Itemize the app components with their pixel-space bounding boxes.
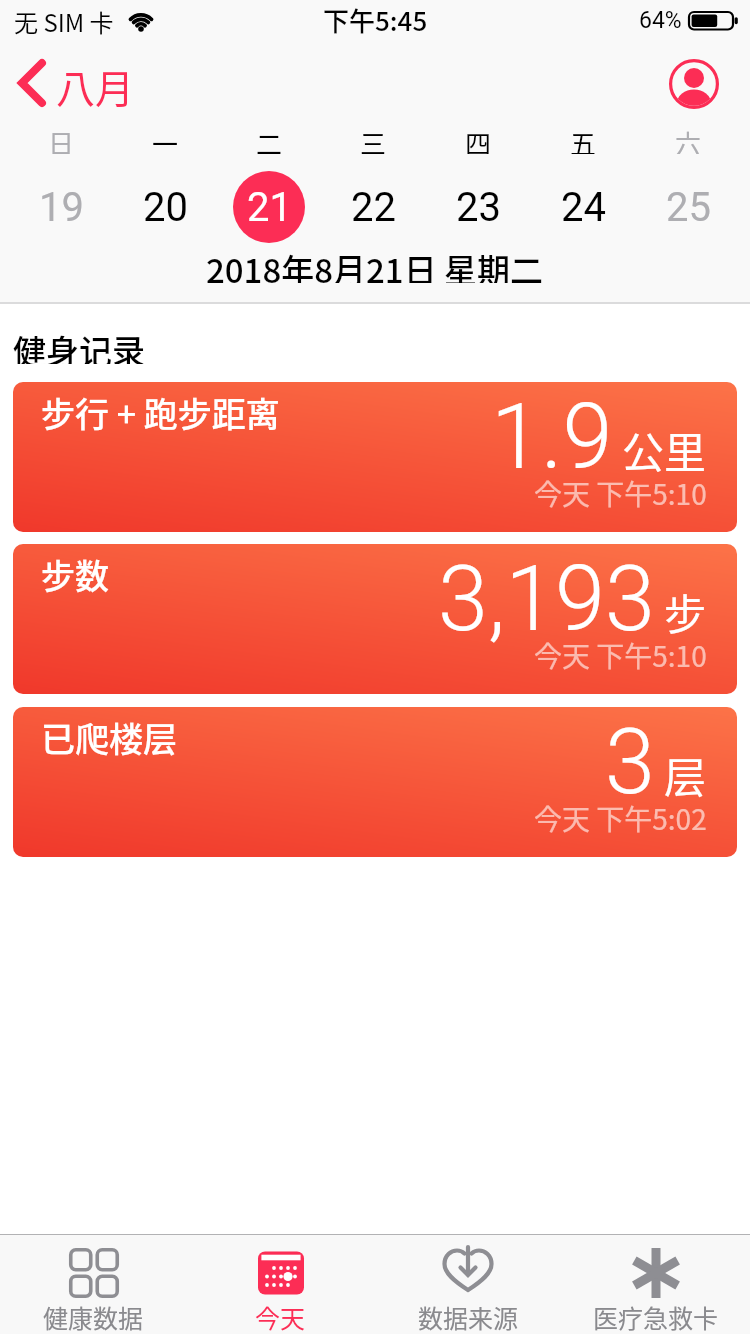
staticText: 24 [561, 184, 606, 231]
button[interactable]: 步数 [13, 544, 737, 694]
staticText: 今天 下午5:10 [534, 473, 707, 514]
staticText: 今天 下午5:10 [534, 635, 707, 676]
button[interactable]: 21 [217, 171, 321, 243]
staticText: 健身记录 [13, 326, 145, 364]
staticText: 21 [247, 184, 292, 231]
staticText: 无 SIM 卡 [14, 4, 114, 39]
staticText: 19 [39, 184, 84, 231]
staticText: 健康数据 [43, 1299, 144, 1331]
staticText: 今天 下午5:02 [534, 798, 707, 839]
staticText: 步数 [41, 550, 109, 599]
staticText: 数据来源 [418, 1299, 519, 1331]
button[interactable]: 健康数据 [0, 1234, 187, 1334]
staticText: 今天 [255, 1299, 306, 1331]
button[interactable]: 今天 [187, 1234, 374, 1334]
button[interactable] [668, 58, 720, 110]
staticText: 日 [48, 124, 75, 154]
staticText: 3 [605, 710, 655, 815]
staticText: 步 [664, 581, 707, 642]
staticText: 三 [360, 124, 387, 154]
staticText: 医疗急救卡 [593, 1299, 719, 1331]
staticText: 下午5:45 [323, 1, 428, 39]
staticText: 四 [465, 124, 492, 154]
button[interactable]: 步行 + 跑步距离 [13, 382, 737, 532]
button[interactable]: 19 [9, 171, 113, 243]
button[interactable]: 23 [426, 171, 531, 243]
button[interactable]: 24 [531, 171, 636, 243]
staticText: 23 [456, 184, 501, 231]
button[interactable]: 医疗急救卡 [562, 1234, 750, 1334]
staticText: 层 [664, 744, 707, 805]
staticText: 20 [143, 184, 188, 231]
staticText: 步行 + 跑步距离 [41, 388, 280, 437]
staticText: 二 [256, 124, 283, 154]
staticText: 五 [570, 124, 597, 154]
button[interactable]: 八月 [10, 56, 160, 112]
staticText: 25 [666, 184, 711, 231]
button[interactable]: 已爬楼层 [13, 707, 737, 857]
staticText: 已爬楼层 [41, 713, 177, 762]
staticText: 2018年8月21日 星期二 [206, 245, 544, 283]
button[interactable]: 数据来源 [374, 1234, 562, 1334]
staticText: 公里 [622, 419, 707, 480]
button[interactable]: 22 [321, 171, 426, 243]
staticText: 22 [351, 184, 396, 231]
staticText: 一 [152, 124, 179, 154]
staticText: 1.9 [491, 385, 613, 490]
button[interactable]: 20 [113, 171, 217, 243]
staticText: 3,193 [438, 547, 655, 652]
button[interactable]: 25 [636, 171, 741, 243]
staticText: 64% [639, 7, 682, 34]
staticText: 六 [675, 124, 702, 154]
staticText: 八月 [56, 58, 135, 114]
